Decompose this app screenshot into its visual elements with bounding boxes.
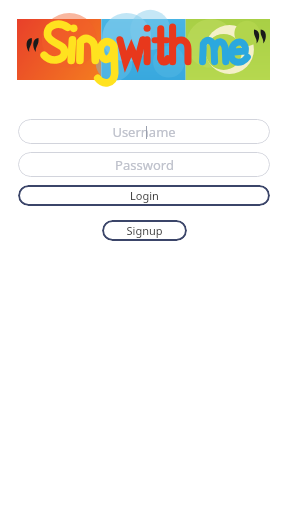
staticText: Username [112, 123, 176, 141]
staticText: Password [115, 156, 174, 174]
button[interactable]: Password [18, 152, 270, 177]
staticText: Signup [126, 223, 163, 238]
staticText: Login [130, 188, 159, 203]
button[interactable]: Login [18, 185, 270, 206]
button[interactable]: Username [18, 119, 270, 144]
button[interactable]: Signup [102, 220, 187, 241]
